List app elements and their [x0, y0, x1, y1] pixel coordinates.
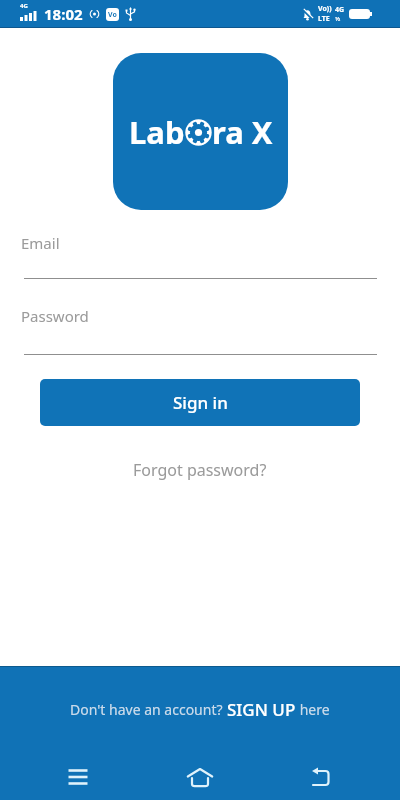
- staticText: Don't have an account?: [70, 700, 227, 719]
- staticText: ½: [335, 15, 341, 23]
- staticText: ra X: [212, 111, 273, 153]
- staticText: LTE: [318, 14, 330, 24]
- button[interactable]: [308, 765, 334, 789]
- staticText: Forgot password?: [133, 459, 267, 481]
- staticText: Email: [21, 233, 60, 253]
- staticText: 4G: [335, 5, 345, 15]
- staticText: here: [296, 700, 330, 719]
- staticText: SIGN UP: [227, 698, 296, 721]
- staticText: Lab: [129, 111, 185, 153]
- button[interactable]: Forgot password?: [133, 459, 267, 481]
- button[interactable]: Sign in: [40, 379, 360, 426]
- staticText: Vo)): [318, 4, 332, 14]
- staticText: Sign in: [173, 391, 228, 414]
- staticText: 4G: [20, 2, 28, 10]
- staticText: Vo: [108, 10, 117, 20]
- staticText: Password: [21, 306, 89, 326]
- button[interactable]: Don't have an account?: [70, 698, 330, 721]
- button[interactable]: [66, 765, 90, 789]
- button[interactable]: [187, 765, 213, 789]
- staticText: 18:02: [44, 4, 83, 24]
